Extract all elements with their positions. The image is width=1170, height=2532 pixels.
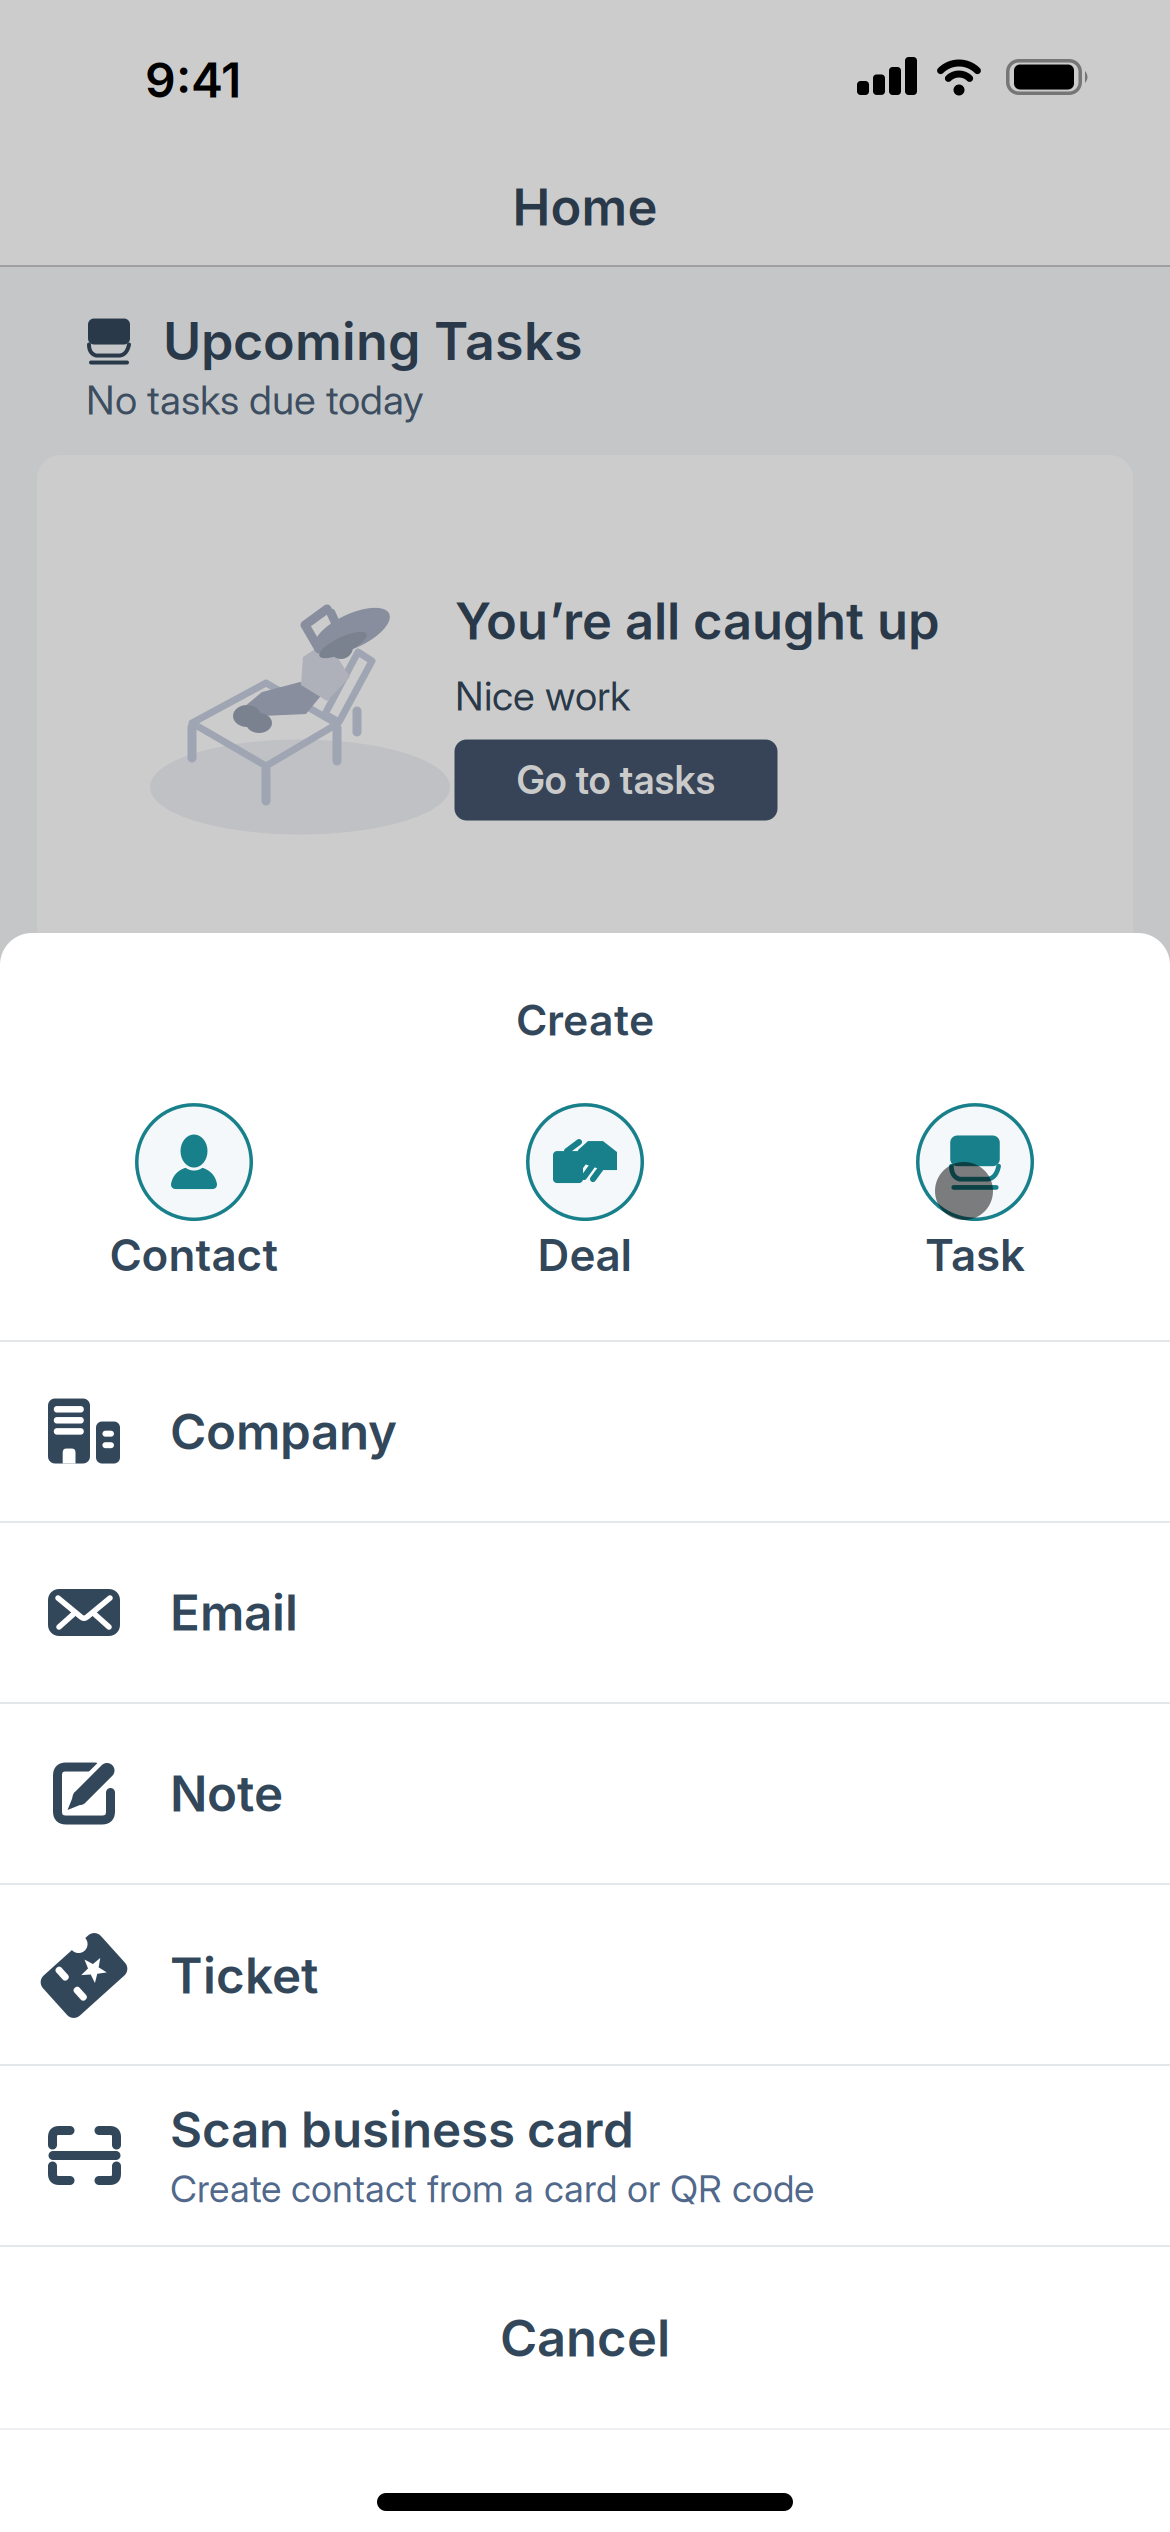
button[interactable]: Ticket (0, 1886, 1170, 2065)
button[interactable]: Go to tasks (454, 739, 777, 820)
staticText: Ticket (170, 1946, 318, 2005)
button[interactable]: Email (0, 1523, 1170, 1702)
button[interactable]: Note (0, 1704, 1170, 1883)
button[interactable]: Contact (109, 1103, 278, 1281)
staticText: You’re all caught up (455, 591, 940, 651)
staticText: Go to tasks (516, 757, 715, 803)
staticText: Create contact from a card or QR code (170, 2167, 814, 2211)
staticText: Upcoming Tasks (163, 310, 583, 372)
staticText: Task (925, 1229, 1025, 1281)
staticText: Scan business card (170, 2100, 634, 2159)
button[interactable]: Deal (526, 1103, 644, 1281)
button[interactable]: Task (916, 1103, 1034, 1281)
button[interactable]: Scan business card (0, 2066, 1170, 2245)
staticText: Nice work (455, 672, 630, 720)
staticText: Contact (109, 1229, 278, 1281)
button[interactable]: Company (0, 1342, 1170, 1521)
staticText: 9:41 (145, 52, 241, 108)
staticText: Home (512, 177, 657, 237)
staticText: Email (170, 1583, 298, 1642)
staticText: Note (170, 1764, 283, 1823)
staticText: Deal (537, 1229, 632, 1281)
staticText: Company (170, 1402, 397, 1461)
staticText: No tasks due today (86, 376, 424, 424)
button[interactable]: Cancel (0, 2248, 1170, 2428)
staticText: Create (516, 995, 654, 1045)
staticText: Cancel (500, 2308, 670, 2368)
